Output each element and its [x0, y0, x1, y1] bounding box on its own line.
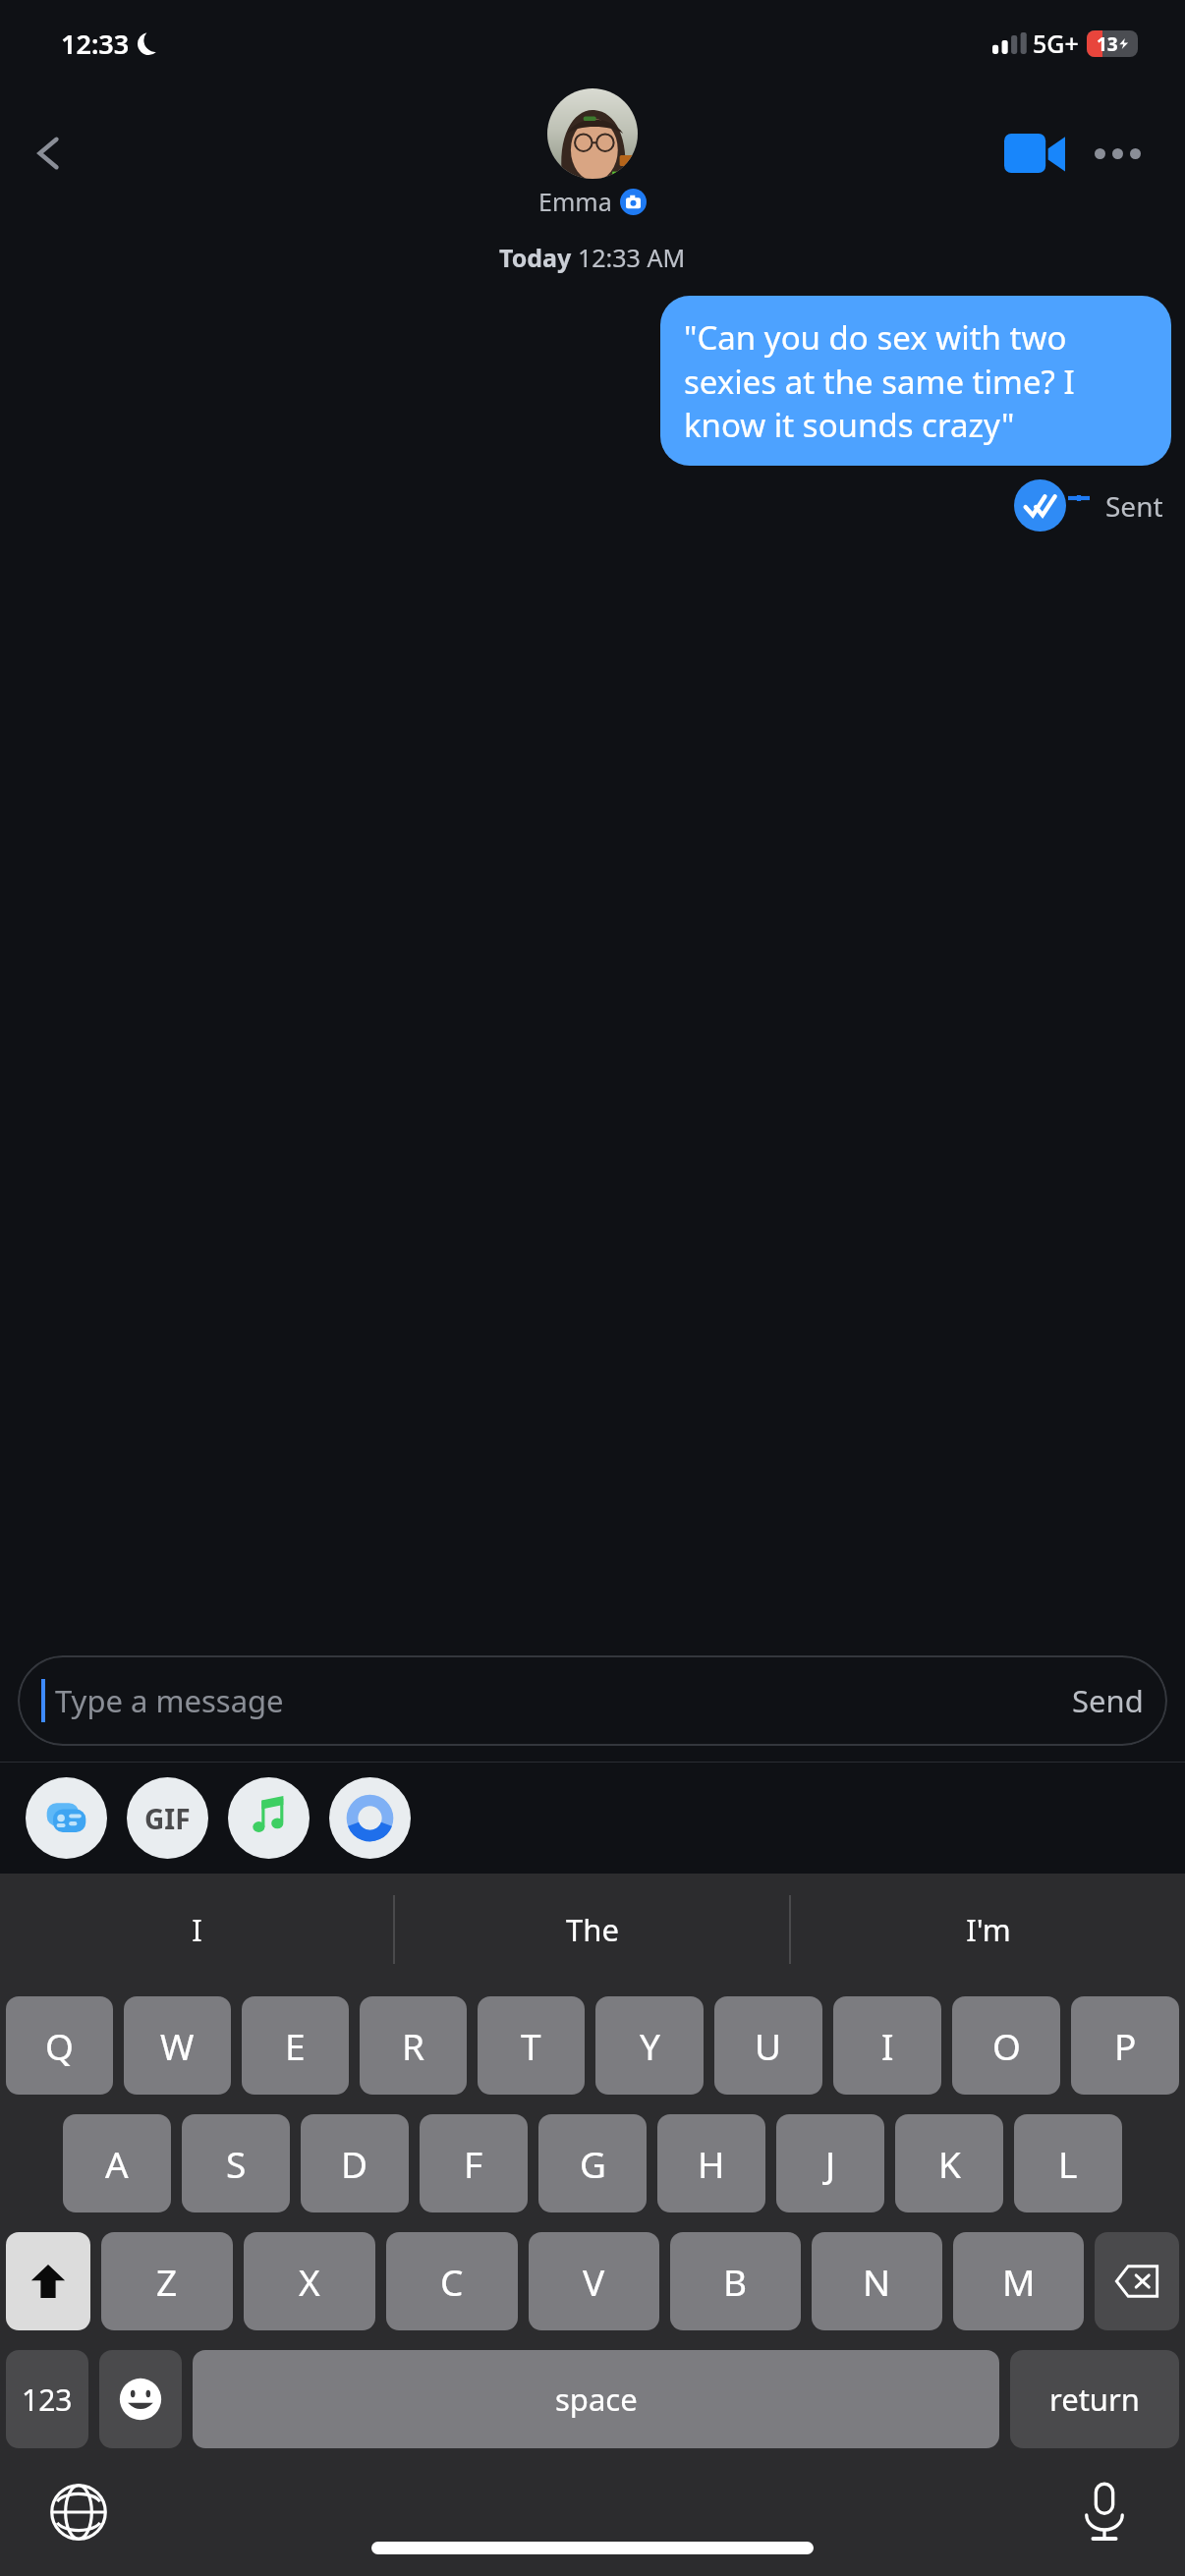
button[interactable]: "Can you do sex with two sexies at the s… — [660, 296, 1171, 466]
button[interactable]: I'm — [791, 1874, 1185, 1985]
staticText: W — [160, 2021, 195, 2070]
button[interactable]: More options — [1079, 115, 1156, 192]
staticText: 5G+ — [1033, 27, 1079, 60]
button[interactable]: T — [478, 1996, 585, 2095]
staticText: S — [226, 2139, 247, 2188]
button[interactable]: Type a message — [18, 1655, 1167, 1746]
staticText: L — [1058, 2139, 1078, 2188]
button[interactable]: Emma — [538, 88, 647, 218]
staticText: 12:33 AM — [578, 241, 686, 274]
staticText: Q — [45, 2021, 74, 2070]
button[interactable]: B — [670, 2232, 801, 2330]
button[interactable]: Send — [1072, 1680, 1144, 1721]
button[interactable]: K — [895, 2114, 1003, 2212]
staticText: Z — [156, 2257, 178, 2306]
staticText: B — [723, 2257, 748, 2306]
button[interactable]: Emoji — [99, 2350, 182, 2448]
button[interactable]: Y — [595, 1996, 704, 2095]
button[interactable]: Z — [101, 2232, 233, 2330]
staticText: I — [192, 1909, 202, 1950]
button[interactable]: Q — [6, 1996, 113, 2095]
button[interactable]: Back — [10, 114, 88, 193]
button[interactable]: Video call — [990, 109, 1079, 197]
staticText: O — [992, 2021, 1021, 2070]
staticText: R — [402, 2021, 425, 2070]
staticText: Sent — [1105, 487, 1163, 525]
button[interactable]: H — [657, 2114, 765, 2212]
button[interactable]: Backspace — [1095, 2232, 1179, 2330]
staticText: D — [341, 2139, 368, 2188]
button[interactable]: Delivered — [1014, 479, 1066, 532]
button[interactable]: A — [63, 2114, 171, 2212]
button[interactable]: Dictation — [1065, 2473, 1144, 2551]
button[interactable]: R — [360, 1996, 467, 2095]
staticText: P — [1114, 2021, 1137, 2070]
staticText: The — [566, 1909, 619, 1950]
staticText: X — [299, 2257, 320, 2306]
staticText: M — [1002, 2257, 1036, 2306]
staticText: F — [464, 2139, 483, 2188]
button[interactable]: Music — [228, 1777, 310, 1859]
staticText: J — [825, 2139, 836, 2188]
button[interactable]: J — [776, 2114, 884, 2212]
button[interactable]: GIF — [127, 1777, 208, 1859]
button[interactable]: F — [420, 2114, 528, 2212]
staticText: C — [440, 2257, 464, 2306]
button[interactable]: W — [124, 1996, 231, 2095]
button[interactable]: O — [952, 1996, 1060, 2095]
button[interactable]: P — [1071, 1996, 1179, 2095]
staticText: space — [555, 2379, 638, 2420]
staticText: Type a message — [55, 1680, 1072, 1721]
staticText: Today — [499, 241, 578, 274]
staticText: H — [698, 2139, 725, 2188]
staticText: "Can you do sex with two sexies at the s… — [684, 315, 1148, 446]
button[interactable]: D — [301, 2114, 409, 2212]
button[interactable]: Switch keyboard — [39, 2473, 118, 2551]
button[interactable]: V — [529, 2232, 659, 2330]
staticText: 12:33 — [61, 26, 130, 62]
staticText: A — [105, 2139, 129, 2188]
staticText: Y — [640, 2021, 660, 2070]
staticText: GIF — [144, 1800, 191, 1837]
button[interactable]: Apple Pay — [329, 1777, 411, 1859]
button[interactable]: space — [193, 2350, 999, 2448]
staticText: 123 — [22, 2380, 73, 2420]
button[interactable]: return — [1010, 2350, 1179, 2448]
staticText: K — [938, 2139, 961, 2188]
staticText: G — [580, 2139, 606, 2188]
staticText: Emma — [538, 185, 612, 218]
staticText: E — [285, 2021, 306, 2070]
staticText: 13 — [1097, 31, 1118, 57]
staticText: U — [755, 2021, 782, 2070]
staticText: I — [881, 2021, 894, 2070]
button[interactable]: C — [386, 2232, 518, 2330]
button[interactable]: I — [0, 1874, 393, 1985]
button[interactable]: S — [182, 2114, 290, 2212]
button[interactable]: U — [714, 1996, 822, 2095]
staticText: return — [1049, 2379, 1140, 2420]
button[interactable]: G — [538, 2114, 647, 2212]
staticText: N — [863, 2257, 891, 2306]
button[interactable]: X — [244, 2232, 375, 2330]
button[interactable]: E — [242, 1996, 349, 2095]
button[interactable]: L — [1014, 2114, 1122, 2212]
button[interactable]: Stickers — [26, 1777, 107, 1859]
staticText: V — [583, 2257, 605, 2306]
button[interactable]: 123 — [6, 2350, 88, 2448]
staticText: T — [521, 2021, 541, 2070]
button[interactable]: M — [953, 2232, 1084, 2330]
staticText: I'm — [966, 1909, 1011, 1950]
button[interactable]: N — [812, 2232, 942, 2330]
button[interactable]: Shift — [6, 2232, 90, 2330]
button[interactable]: I — [833, 1996, 941, 2095]
button[interactable]: The — [395, 1874, 789, 1985]
